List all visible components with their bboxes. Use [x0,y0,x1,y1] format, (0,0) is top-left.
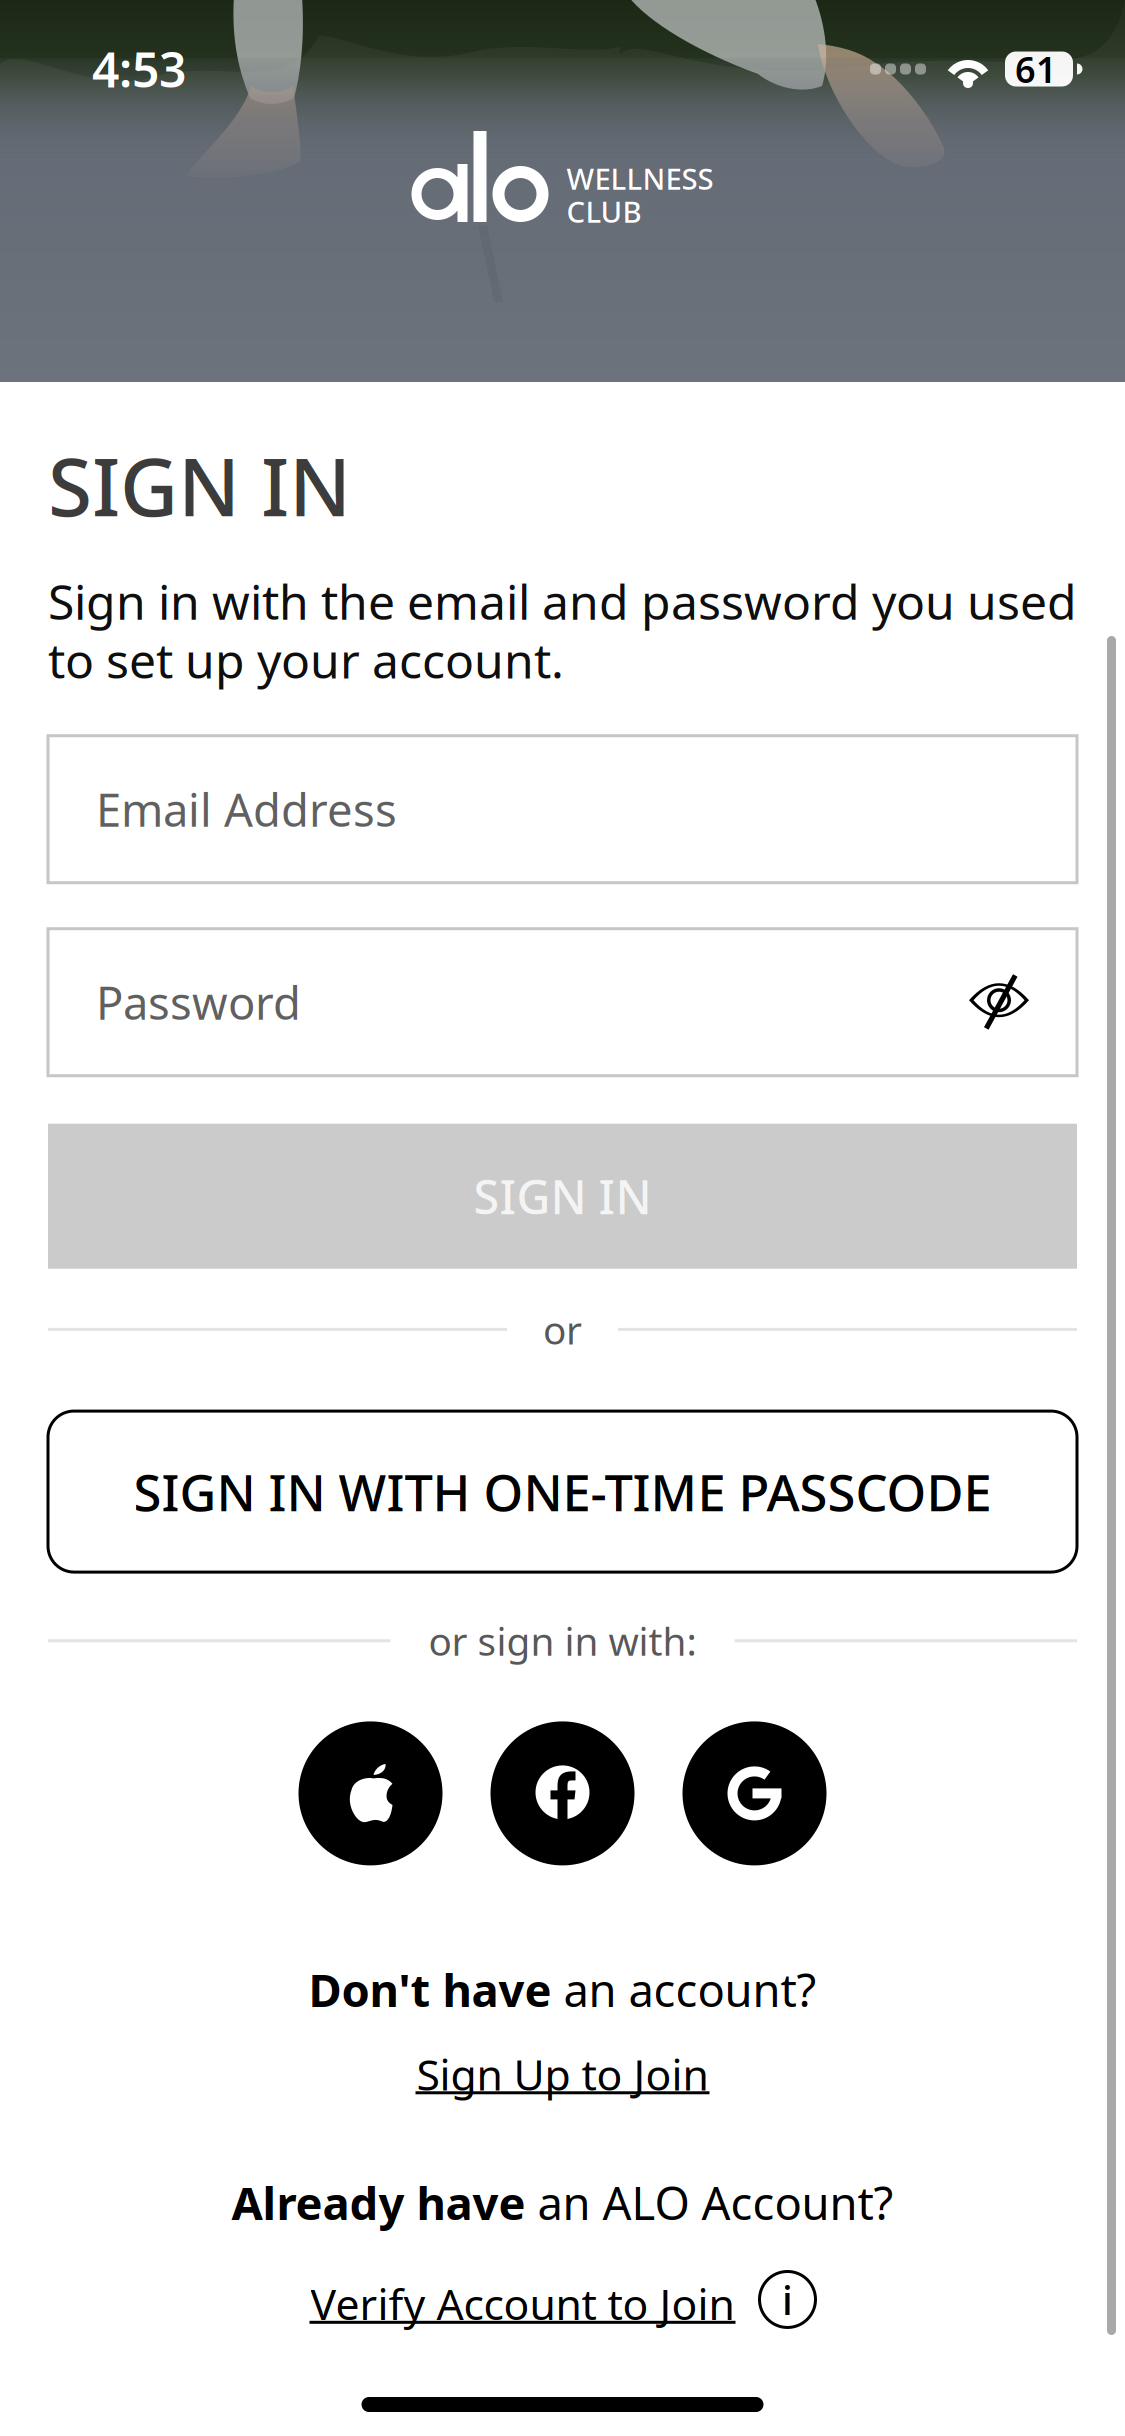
button[interactable]: SIGN IN [48,1124,1077,1269]
staticText: SIGN IN [48,432,351,538]
button[interactable]: Sign in with Apple [298,1721,442,1865]
button[interactable]: Email Address [48,736,1077,883]
staticText: to set up your account. [48,628,564,692]
staticText: Sign Up to Join [416,2046,708,2102]
staticText: or sign in with: [428,1615,696,1666]
staticText: 61 [1015,45,1057,93]
button[interactable]: SIGN IN WITH ONE-TIME PASSCODE [48,1411,1077,1572]
button[interactable]: Password [48,929,1077,1076]
staticText: Don't have an account? [308,1959,816,2020]
staticText: SIGN IN WITH ONE-TIME PASSCODE [133,1458,991,1525]
staticText: CLUB [566,192,641,231]
staticText: i [782,2273,793,2326]
button[interactable]: Verify Account to Join [309,2271,815,2327]
staticText: Password [96,972,301,1032]
staticText: 4:53 [92,37,186,101]
staticText: Verify Account to Join [310,2275,734,2332]
staticText: Email Address [96,779,397,839]
button[interactable]: Sign in with Facebook [490,1721,634,1865]
staticText: WELLNESS [566,159,713,198]
staticText: Sign in with the email and password you … [48,569,1077,633]
staticText: or [543,1304,582,1355]
button[interactable]: Sign Up to Join [415,2046,709,2094]
button[interactable]: Sign in with Google [682,1721,826,1865]
staticText: SIGN IN [473,1165,651,1227]
staticText: Already have an ALO Account? [231,2172,893,2232]
